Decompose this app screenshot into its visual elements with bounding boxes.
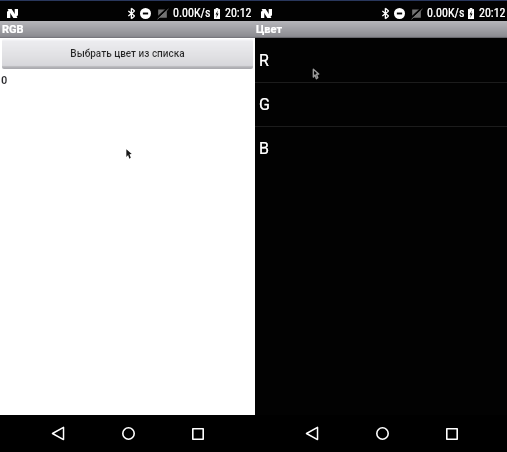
button[interactable]: Home: [93, 415, 163, 452]
staticText: RGB: [2, 23, 24, 36]
button[interactable]: R: [255, 38, 507, 82]
button[interactable]: B: [255, 127, 507, 170]
staticText: G: [259, 95, 270, 114]
button[interactable]: G: [255, 83, 507, 126]
staticText: 0: [1, 74, 8, 87]
button[interactable]: Recents: [163, 415, 233, 452]
staticText: R: [259, 51, 269, 70]
staticText: 20:12: [479, 6, 506, 20]
button[interactable]: Back: [23, 415, 93, 452]
staticText: Цвет: [256, 23, 283, 36]
staticText: B: [259, 139, 269, 158]
button[interactable]: Recents: [417, 415, 487, 452]
staticText: 0.00K/s: [173, 6, 211, 20]
staticText: 20:12: [225, 6, 252, 20]
staticText: 0.00K/s: [427, 6, 465, 20]
button[interactable]: Back: [277, 415, 347, 452]
button[interactable]: Home: [347, 415, 417, 452]
button[interactable]: Выбрать цвет из списка: [2, 39, 253, 69]
staticText: Выбрать цвет из списка: [70, 48, 185, 60]
